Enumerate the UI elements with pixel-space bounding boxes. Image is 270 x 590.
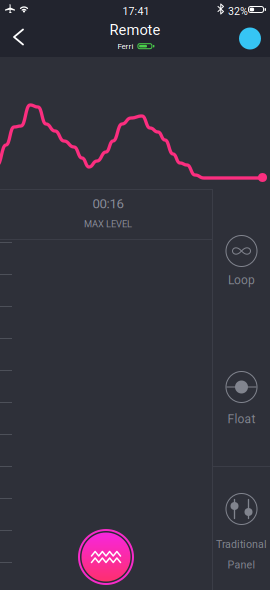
staticText: Loop bbox=[228, 273, 255, 287]
staticText: Panel bbox=[227, 558, 255, 571]
staticText: 17:41 bbox=[122, 5, 149, 17]
button[interactable]: Loop bbox=[213, 235, 270, 287]
staticText: Float bbox=[227, 412, 255, 426]
staticText: Traditional bbox=[216, 538, 267, 550]
staticText: Remote bbox=[109, 21, 160, 39]
button[interactable]: Traditional bbox=[213, 493, 270, 571]
button[interactable]: Float bbox=[213, 371, 270, 426]
button[interactable]: Start stimulation bbox=[77, 528, 135, 586]
staticText: 00:16 bbox=[92, 196, 123, 212]
staticText: Ferri bbox=[117, 41, 133, 51]
staticText: 32% bbox=[228, 5, 248, 17]
button[interactable]: Back bbox=[3, 20, 34, 53]
button[interactable]: Account bbox=[231, 19, 269, 57]
staticText: MAX LEVEL bbox=[84, 219, 132, 229]
